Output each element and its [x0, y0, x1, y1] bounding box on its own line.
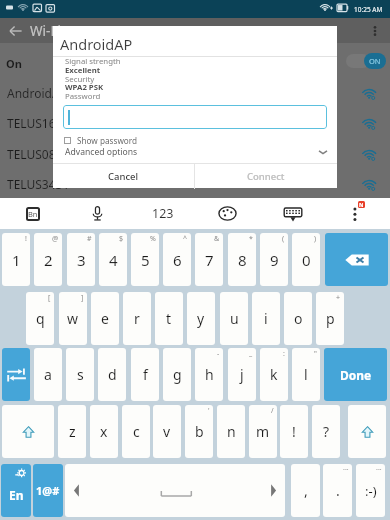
button[interactable]: AndroidAP [0, 78, 390, 108]
staticText: _ [249, 349, 253, 359]
button[interactable]: 123 [140, 198, 186, 229]
staticText: : [283, 349, 285, 359]
button[interactable]: t [155, 292, 183, 345]
staticText: r [134, 309, 140, 328]
button[interactable]: w [59, 292, 87, 345]
button[interactable]: k [260, 348, 288, 401]
button[interactable]: h [195, 348, 223, 401]
staticText: ( [282, 234, 285, 244]
button[interactable]: r [123, 292, 151, 345]
button[interactable]: Theme [204, 198, 250, 229]
button[interactable]: p [316, 292, 344, 345]
button[interactable]: x [90, 405, 118, 458]
button[interactable]: g [163, 348, 191, 401]
button[interactable]: a [34, 348, 62, 401]
button[interactable]: Cancel [53, 164, 194, 189]
other: More options [367, 23, 383, 39]
staticText: v [163, 422, 171, 441]
button[interactable]: , [291, 464, 320, 517]
staticText: , [304, 481, 308, 500]
button[interactable]: i [252, 292, 280, 345]
button[interactable]: More options [340, 198, 376, 229]
button[interactable]: Backspace [325, 233, 388, 286]
staticText: Signal strength [65, 56, 121, 67]
button[interactable]: Space [65, 464, 285, 517]
button[interactable]: d [98, 348, 126, 401]
staticText: s [77, 365, 84, 384]
button[interactable]: s [66, 348, 94, 401]
staticText: c [133, 422, 140, 441]
button[interactable]: b [185, 405, 213, 458]
staticText: ? [323, 422, 330, 441]
button[interactable]: q [26, 292, 54, 345]
staticText: ··· [376, 465, 382, 475]
button[interactable]: c [122, 405, 150, 458]
button[interactable]: 0 [292, 233, 320, 286]
button[interactable]: n [217, 405, 245, 458]
staticText: ) [314, 234, 317, 244]
button[interactable]: :-) [356, 464, 385, 517]
button[interactable]: TELUS3431 [0, 169, 390, 199]
staticText: 5 [141, 250, 150, 270]
button[interactable]: ! [280, 405, 308, 458]
staticText: TELUS1688 [7, 115, 70, 131]
button[interactable]: u [220, 292, 248, 345]
button[interactable]: Keyboard layout [270, 198, 316, 229]
staticText: / [271, 406, 274, 416]
button[interactable]: Shift [2, 405, 54, 458]
staticText: b [195, 422, 204, 441]
staticText: - [217, 349, 220, 359]
staticText: 6 [173, 250, 182, 270]
button[interactable]: l [292, 348, 320, 401]
button[interactable]: ? [312, 405, 340, 458]
button[interactable]: Voice input [74, 198, 120, 229]
button[interactable]: o [284, 292, 312, 345]
staticText: j [240, 365, 244, 384]
staticText: y [197, 309, 205, 328]
button[interactable]: Shift [348, 405, 386, 458]
button[interactable]: 7 [195, 233, 223, 286]
button[interactable]: En [1, 464, 31, 517]
staticText: q [36, 309, 45, 328]
button[interactable]: f [131, 348, 159, 401]
button[interactable]: Bn [10, 198, 56, 229]
button[interactable]: TELUS1688 [0, 108, 390, 138]
button[interactable] [63, 105, 327, 129]
button[interactable]: m [249, 405, 277, 458]
button[interactable]: j [228, 348, 256, 401]
staticText: n [227, 422, 236, 441]
staticText: i [264, 309, 268, 328]
staticText: Bn [28, 209, 38, 219]
button[interactable]: 8 [228, 233, 256, 286]
button[interactable]: 1 [2, 233, 30, 286]
button[interactable]: Tab [2, 348, 30, 401]
button[interactable]: 3 [67, 233, 95, 286]
staticText: @ [52, 234, 59, 244]
staticText: [ [48, 293, 51, 303]
button[interactable]: . [323, 464, 352, 517]
button[interactable]: 4 [99, 233, 127, 286]
staticText: p [326, 309, 335, 328]
staticText: 2 [44, 250, 53, 270]
staticText: ] [81, 293, 84, 303]
button[interactable]: e [91, 292, 119, 345]
button[interactable]: z [58, 405, 86, 458]
button[interactable]: v [153, 405, 181, 458]
button[interactable]: y [187, 292, 215, 345]
button[interactable]: 2 [34, 233, 62, 286]
staticText: 3 [77, 250, 86, 270]
button[interactable]: 9 [260, 233, 288, 286]
button[interactable]: Done [324, 348, 387, 401]
button[interactable]: 6 [163, 233, 191, 286]
button[interactable]: TELUS0889 [0, 139, 390, 169]
button[interactable]: Advanced options [53, 144, 337, 160]
button[interactable]: Back [0, 18, 390, 43]
button[interactable]: ON [344, 45, 386, 77]
button[interactable]: Show password [64, 134, 138, 147]
button[interactable]: Connect [195, 164, 337, 189]
staticText: ! [25, 234, 27, 244]
staticText: ON [369, 56, 381, 66]
button[interactable]: 1@# [33, 464, 63, 517]
staticText: o [294, 309, 303, 328]
button[interactable]: 5 [131, 233, 159, 286]
